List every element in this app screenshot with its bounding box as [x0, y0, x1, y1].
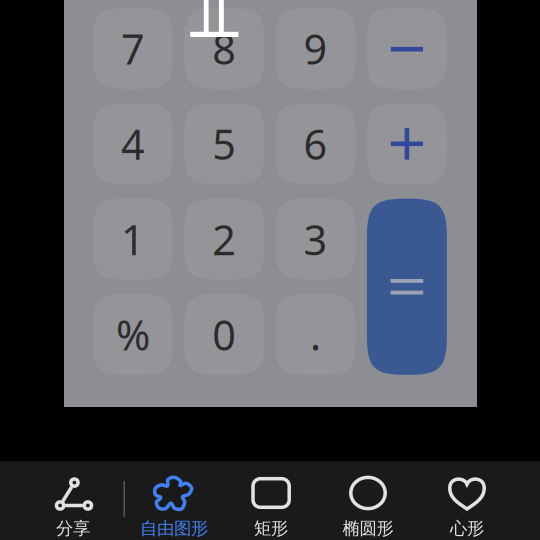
button[interactable]: Equals: [367, 199, 447, 375]
button[interactable]: 4: [93, 103, 173, 184]
button[interactable]: 分享: [25, 461, 121, 540]
staticText: 5: [212, 116, 236, 171]
staticText: 矩形: [254, 518, 288, 539]
button[interactable]: 自由图形: [126, 461, 222, 540]
staticText: 自由图形: [140, 518, 208, 539]
button[interactable]: 5: [184, 103, 264, 184]
staticText: 4: [121, 116, 145, 171]
staticText: .: [310, 307, 321, 362]
button[interactable]: 椭圆形: [320, 461, 416, 540]
button[interactable]: 3: [276, 199, 356, 280]
button[interactable]: %: [93, 294, 173, 375]
staticText: 1: [121, 212, 145, 267]
button[interactable]: 6: [276, 103, 356, 184]
button[interactable]: 2: [184, 199, 264, 280]
button[interactable]: .: [276, 294, 356, 375]
button[interactable]: 0: [184, 294, 264, 375]
button[interactable]: 8: [184, 8, 264, 89]
staticText: 8: [212, 21, 236, 76]
staticText: %: [116, 307, 150, 362]
staticText: 椭圆形: [342, 518, 393, 539]
button[interactable]: 1: [93, 199, 173, 280]
staticText: 2: [212, 212, 236, 267]
staticText: 0: [212, 307, 236, 362]
staticText: 心形: [450, 518, 484, 539]
button[interactable]: 7: [93, 8, 173, 89]
staticText: 7: [121, 21, 145, 76]
staticText: 9: [304, 21, 328, 76]
button[interactable]: 矩形: [223, 461, 319, 540]
staticText: 6: [304, 116, 328, 171]
button[interactable]: Plus: [367, 103, 447, 184]
staticText: 3: [304, 212, 328, 267]
button[interactable]: Minus: [367, 8, 447, 89]
staticText: 分享: [56, 518, 90, 539]
button[interactable]: 心形: [419, 461, 515, 540]
button[interactable]: 9: [276, 8, 356, 89]
